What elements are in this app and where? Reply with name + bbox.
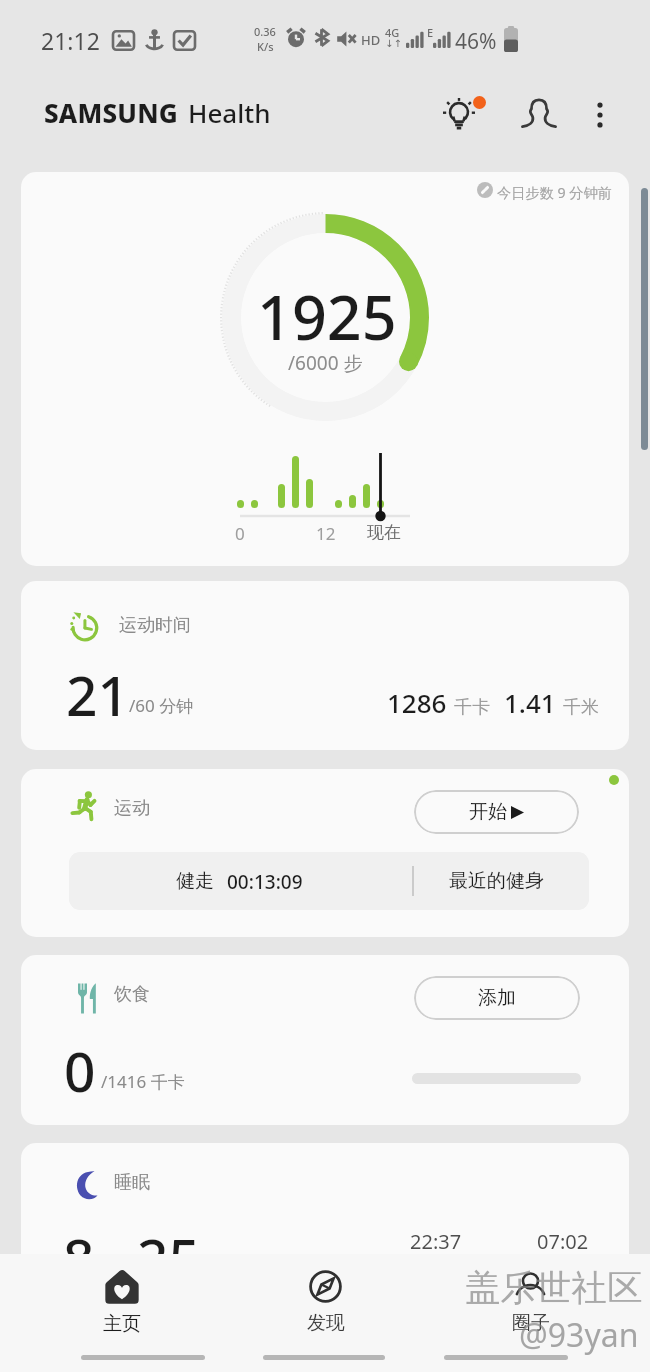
button[interactable]: More options [576, 91, 624, 139]
staticText: E [427, 25, 434, 40]
staticText: 发现 [307, 1311, 345, 1335]
staticText: 1.41 [504, 685, 556, 720]
staticText: 12 [316, 522, 336, 545]
staticText: 46% [455, 27, 497, 56]
staticText: 0 [235, 522, 245, 545]
staticText: /60 分钟 [129, 694, 194, 717]
staticText: 健走 [176, 869, 214, 893]
staticText: SAMSUNG [44, 95, 178, 130]
staticText: 开始 [469, 800, 507, 824]
staticText: 00:13:09 [227, 869, 303, 895]
staticText: K/s [257, 39, 274, 54]
button[interactable]: 健走 [69, 852, 589, 910]
staticText: 8 [63, 1220, 95, 1295]
staticText: 21:12 [41, 25, 100, 56]
staticText: 盖乐世社区 [465, 1266, 643, 1311]
button[interactable]: 圈子 [470, 1254, 591, 1372]
staticText: ↓↑ [385, 38, 402, 50]
staticText: 22:37 [410, 1228, 462, 1255]
staticText: 主页 [103, 1312, 141, 1336]
button[interactable]: 发现 [265, 1254, 386, 1372]
staticText: 圈子 [512, 1311, 550, 1335]
staticText: 0.36 [254, 24, 276, 39]
button[interactable]: 饮食 [21, 955, 629, 1125]
button[interactable]: 添加 [414, 976, 580, 1020]
staticText: 千米 [563, 696, 599, 719]
button[interactable]: Profile [513, 89, 565, 141]
staticText: 现在 [367, 522, 401, 543]
button[interactable]: 运动 [21, 769, 629, 937]
button[interactable]: 今日步数 9 分钟前 [21, 172, 629, 566]
staticText: 千卡 [454, 696, 490, 719]
staticText: /1416 千卡 [101, 1070, 185, 1093]
staticText: 饮食 [114, 983, 150, 1006]
staticText: 睡眠 [114, 1171, 150, 1194]
staticText: 1286 [387, 685, 447, 720]
staticText: 添加 [478, 986, 516, 1010]
staticText: @93yan [519, 1313, 639, 1357]
staticText: 1925 [257, 275, 397, 358]
button[interactable]: 睡眠 [21, 1143, 629, 1313]
staticText: 07:02 [537, 1228, 589, 1255]
button[interactable]: 开始 [414, 790, 579, 834]
staticText: 运动 [114, 797, 150, 820]
button[interactable]: 运动时间 [21, 581, 629, 750]
staticText: Health [188, 95, 271, 130]
button[interactable]: Tips [435, 89, 487, 141]
staticText: /6000 步 [288, 350, 363, 376]
staticText: 最近的健身 [449, 869, 544, 893]
staticText: HD [361, 31, 381, 49]
button[interactable]: 主页 [61, 1254, 182, 1372]
staticText: 0 [64, 1033, 96, 1108]
staticText: 运动时间 [119, 614, 191, 637]
staticText: 25 [137, 1220, 200, 1295]
staticText: 4G [385, 25, 400, 40]
staticText: 21 [66, 657, 129, 732]
staticText: 今日步数 9 分钟前 [497, 183, 612, 202]
